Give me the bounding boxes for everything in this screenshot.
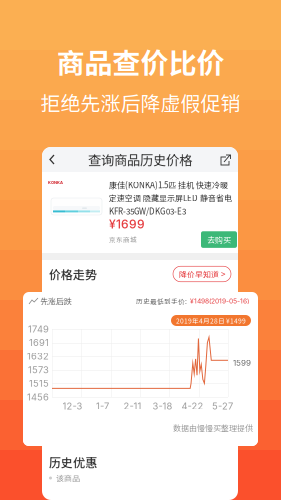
staticText: 4-22 [181, 400, 203, 412]
staticText: 1599 [233, 358, 251, 368]
staticText: 价格走势 [49, 265, 97, 283]
button[interactable]: 去购买 [201, 231, 237, 248]
staticText: KFR-35GW/DKG03-E3 [109, 205, 186, 217]
button[interactable]: 分享 [212, 147, 238, 172]
button[interactable]: 降价早知道 > [173, 266, 231, 282]
staticText: 查询商品历史价格 [88, 150, 192, 169]
staticText: 1749 [28, 323, 49, 335]
staticText: 定速空调 隐藏显示屏LED 静音省电 [109, 192, 232, 204]
staticText: 历史优惠 [49, 453, 97, 471]
staticText: 1691 [29, 337, 49, 348]
staticText: 京东商城 [109, 235, 137, 244]
staticText: 先涨后跌 [40, 295, 72, 307]
staticText: 商品查价比价 [56, 41, 224, 82]
staticText: 该商品 [56, 472, 80, 484]
staticText: 去购买 [207, 234, 231, 245]
staticText: 拒绝先涨后降虚假促销 [40, 88, 240, 117]
staticText: 历史最低到手价: [136, 296, 187, 306]
staticText: 2019年4月28日 ¥1499 [176, 316, 246, 325]
staticText: 1-7 [96, 400, 109, 412]
staticText: 2-11 [123, 400, 141, 412]
button[interactable]: 返回 [42, 147, 68, 172]
staticText: 1515 [29, 378, 49, 389]
staticText: 数据由慢慢买整理提供 [173, 422, 253, 434]
staticText: 康佳(KONKA)1.5匹 挂机 快速冷暖 [109, 179, 228, 191]
staticText: 1456 [27, 391, 49, 403]
staticText: 12-3 [62, 400, 82, 412]
staticText: 5-27 [212, 400, 233, 412]
staticText: 1632 [27, 351, 49, 362]
staticText: 1573 [28, 364, 49, 375]
staticText: ¥1699 [109, 217, 145, 231]
staticText: 3-18 [152, 400, 172, 412]
staticText: ¥1498(2019-05-16) [190, 297, 249, 305]
staticText: KONKA [48, 180, 63, 185]
staticText: 降价早知道 > [179, 268, 225, 280]
